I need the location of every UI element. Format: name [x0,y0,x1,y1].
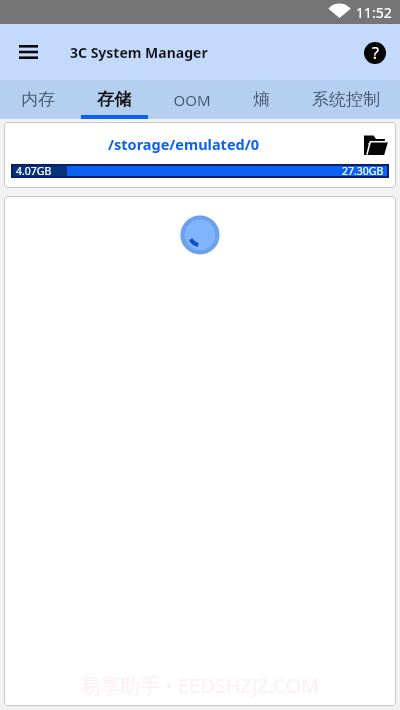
staticText: 3C System Manager [70,43,208,62]
button[interactable]: 熵 [231,80,291,119]
button[interactable]: Help [355,33,395,73]
button[interactable]: Browse folder [359,128,393,162]
button[interactable]: /storage/emulated/0 [108,134,260,154]
button[interactable]: 内存 [0,80,75,119]
staticText: 系统控制 [312,89,380,110]
staticText: 11:52 [356,3,392,22]
staticText: ? [372,42,379,64]
staticText: 易享助手 • EEDSHZJZ.COM [80,672,320,699]
button[interactable]: Open navigation menu [6,30,50,74]
staticText: 27.30GB [342,164,384,178]
button[interactable]: 存储 [75,80,153,119]
staticText: 熵 [253,89,270,110]
button[interactable]: 系统控制 [291,80,400,119]
staticText: 4.07GB [16,164,52,178]
staticText: OOM [173,90,211,110]
button[interactable]: OOM [153,80,231,119]
staticText: 内存 [21,89,55,110]
staticText: 存储 [97,89,131,110]
